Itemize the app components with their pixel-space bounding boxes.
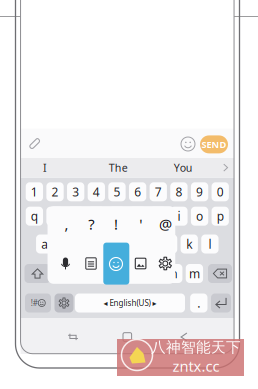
button[interactable]: n <box>165 264 182 283</box>
button[interactable]: Recents <box>61 326 85 348</box>
button[interactable]: ! <box>105 211 127 237</box>
button[interactable]: r <box>88 207 105 226</box>
button[interactable]: i <box>170 207 188 226</box>
staticText: r <box>94 208 99 224</box>
button[interactable]: Keyboard settings <box>154 252 176 274</box>
staticText: 6 <box>134 184 141 200</box>
button[interactable]: 9 <box>191 182 208 201</box>
button[interactable]: !# <box>25 293 51 312</box>
staticText: y <box>135 208 141 224</box>
button[interactable]: , <box>55 211 77 237</box>
button[interactable]: . <box>190 293 207 312</box>
staticText: t <box>115 208 119 224</box>
button[interactable]: k <box>181 234 198 253</box>
staticText: g <box>124 236 131 252</box>
staticText: ' <box>139 214 142 234</box>
button[interactable]: Stickers <box>130 252 152 274</box>
button[interactable]: u <box>150 207 167 226</box>
button[interactable]: Voice input <box>54 252 76 274</box>
button[interactable]: Clipboard <box>80 252 102 274</box>
button[interactable]: z <box>62 264 79 283</box>
button[interactable]: y <box>129 207 146 226</box>
button[interactable]: l <box>201 234 218 253</box>
button[interactable]: The <box>89 158 147 177</box>
button[interactable]: @ <box>154 211 176 237</box>
button[interactable]: b <box>144 264 162 283</box>
button[interactable]: Attach <box>23 131 47 155</box>
button[interactable]: Emoji <box>178 134 198 154</box>
button[interactable]: 3 <box>67 182 84 201</box>
staticText: , <box>64 214 68 234</box>
button[interactable]: 2 <box>46 182 64 201</box>
button[interactable]: f <box>98 234 115 253</box>
button[interactable]: j <box>160 234 177 253</box>
staticText: SEND <box>201 138 226 151</box>
button[interactable]: 7 <box>150 182 167 201</box>
button[interactable]: a <box>36 234 53 253</box>
button[interactable]: 5 <box>108 182 126 201</box>
staticText: The <box>109 160 128 175</box>
button[interactable] <box>24 264 50 283</box>
button[interactable]: o <box>191 207 208 226</box>
staticText: x <box>88 265 94 281</box>
button[interactable]: g <box>119 234 136 253</box>
button[interactable]: 4 <box>88 182 105 201</box>
button[interactable]: ◂ English(US) ▸ <box>75 293 185 312</box>
button[interactable]: More suggestions <box>218 159 234 177</box>
button[interactable]: 8 <box>170 182 188 201</box>
button[interactable] <box>208 264 232 283</box>
button[interactable]: 0 <box>212 182 229 201</box>
staticText: 4 <box>93 184 100 200</box>
staticText: n <box>170 265 177 281</box>
staticText: 0 <box>217 184 224 200</box>
button[interactable]: ? <box>80 211 102 237</box>
staticText: @ <box>159 214 172 234</box>
button[interactable]: Home <box>115 326 139 348</box>
button[interactable]: Emoji <box>105 253 127 275</box>
button[interactable]: c <box>103 264 120 283</box>
button[interactable]: v <box>124 264 141 283</box>
staticText: i <box>177 208 180 224</box>
button[interactable] <box>211 293 231 312</box>
staticText: u <box>155 208 162 224</box>
staticText: 2 <box>51 184 58 200</box>
staticText: 1 <box>31 184 38 200</box>
button[interactable]: ' <box>130 211 152 237</box>
staticText: l <box>208 236 211 252</box>
staticText: zntx.cc <box>172 356 219 376</box>
staticText: f <box>105 236 109 252</box>
staticText: a <box>41 236 48 252</box>
button[interactable]: x <box>82 264 100 283</box>
staticText: v <box>129 265 135 281</box>
staticText: p <box>217 208 224 224</box>
button[interactable]: t <box>108 207 126 226</box>
button[interactable]: SEND <box>200 135 228 153</box>
button[interactable]: 6 <box>129 182 146 201</box>
staticText: You <box>174 160 193 175</box>
button[interactable]: 1 <box>26 182 43 201</box>
staticText: q <box>31 208 38 224</box>
staticText: . <box>197 295 200 311</box>
staticText: ◂ English(US) ▸ <box>103 298 156 308</box>
button[interactable] <box>54 293 73 312</box>
button[interactable]: q <box>26 207 43 226</box>
button[interactable]: w <box>46 207 64 226</box>
staticText: 5 <box>113 184 120 200</box>
staticText: 3 <box>72 184 79 200</box>
button[interactable]: I <box>16 158 74 177</box>
button[interactable]: You <box>154 158 212 177</box>
button[interactable]: Back <box>172 326 196 348</box>
button[interactable]: p <box>212 207 229 226</box>
button[interactable]: m <box>186 264 203 283</box>
